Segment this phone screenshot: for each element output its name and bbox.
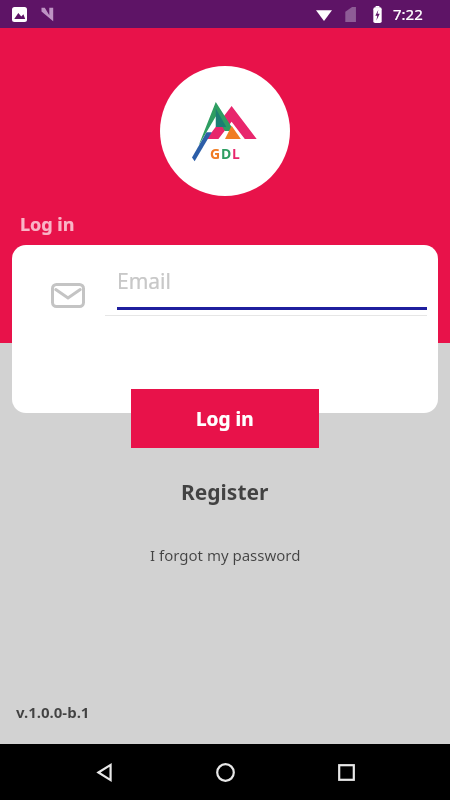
other: Email bbox=[38, 265, 98, 325]
button[interactable]: Register bbox=[125, 470, 325, 514]
staticText: Log in bbox=[196, 406, 254, 432]
staticText: G bbox=[210, 144, 221, 163]
staticText: v.1.0.0-b.1 bbox=[16, 702, 90, 722]
staticText: 7:22 bbox=[393, 4, 423, 24]
staticText: D bbox=[221, 144, 232, 163]
button[interactable]: Back bbox=[80, 758, 128, 786]
button[interactable]: Log in bbox=[131, 389, 319, 448]
staticText: L bbox=[232, 144, 240, 163]
staticText: Register bbox=[181, 478, 269, 507]
staticText: Log in bbox=[20, 212, 75, 237]
staticText: I forgot my password bbox=[150, 545, 301, 565]
button[interactable]: I forgot my password bbox=[105, 536, 345, 574]
staticText: Email bbox=[117, 267, 171, 296]
button[interactable]: Home bbox=[201, 758, 249, 786]
button[interactable]: Email bbox=[105, 259, 427, 321]
button[interactable]: Recent apps bbox=[322, 758, 370, 786]
